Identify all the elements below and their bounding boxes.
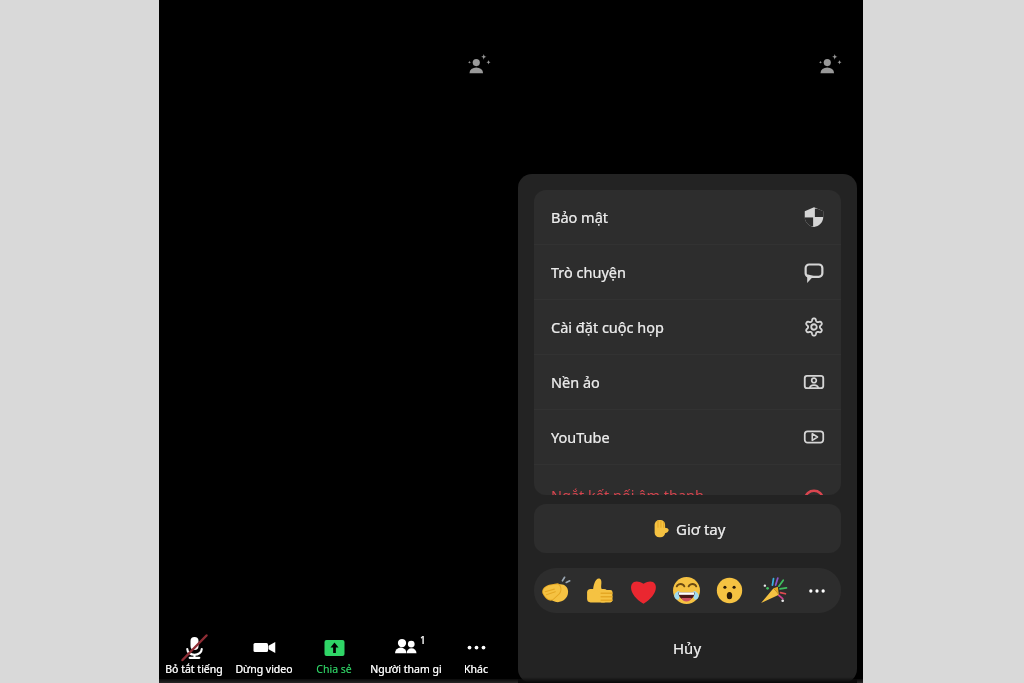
staticText: Hủy [673,638,702,658]
button[interactable]: Giơ tay [534,504,841,553]
staticText: Ngắt kết nối âm thanh [551,485,704,495]
button[interactable]: Bỏ tắt tiếng [159,628,229,683]
button[interactable]: Laughing [666,570,707,611]
staticText: Người tham gi [370,662,442,676]
button[interactable]: Celebrate [753,570,794,611]
button[interactable]: Participant [813,48,847,82]
button[interactable]: YouTube [551,410,825,464]
button[interactable]: Surprised [709,570,750,611]
button[interactable]: Ngắt kết nối âm thanh [551,468,825,495]
staticText: Trò chuyện [551,262,626,282]
staticText: Bảo mật [551,207,609,227]
staticText: Giơ tay [676,519,726,539]
button[interactable]: Chia sẻ [299,628,369,683]
button[interactable]: Clap [536,570,577,611]
button[interactable]: More reactions [796,570,837,611]
staticText: Khác [464,662,488,676]
staticText: Bỏ tắt tiếng [165,662,223,676]
button[interactable]: Heart [623,570,664,611]
button[interactable]: Cài đặt cuộc họp [551,300,825,354]
button[interactable]: Khác [443,628,509,683]
button[interactable]: 1 [369,628,443,683]
button[interactable]: Participant [462,48,496,82]
button[interactable]: Hủy [534,626,841,670]
staticText: YouTube [551,427,610,447]
button[interactable]: Thumbs up [579,570,620,611]
staticText: Chia sẻ [316,662,352,676]
button[interactable]: Nền ảo [551,355,825,409]
staticText: Nền ảo [551,372,600,392]
staticText: Dừng video [235,662,293,676]
button[interactable]: Trò chuyện [551,245,825,299]
staticText: 1 [420,633,426,647]
button[interactable]: Bảo mật [551,190,825,244]
button[interactable]: Dừng video [229,628,299,683]
staticText: Cài đặt cuộc họp [551,317,664,337]
